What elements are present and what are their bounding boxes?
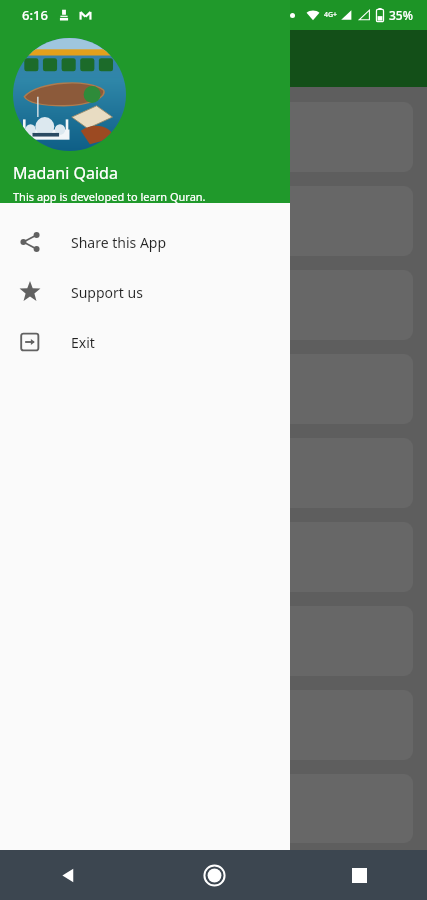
staticText: 4G+: [324, 10, 338, 20]
staticText: 6:16: [22, 6, 48, 24]
button[interactable]: [14, 690, 413, 760]
button[interactable]: Recent apps: [337, 853, 381, 897]
staticText: Exit: [71, 333, 95, 352]
staticText: Madani Qaida: [13, 162, 118, 184]
other: Share: [19, 231, 41, 253]
button[interactable]: [14, 102, 413, 172]
staticText: Support us: [71, 283, 143, 302]
other: Exit: [19, 331, 41, 353]
button[interactable]: [14, 354, 413, 424]
staticText: Share this App: [71, 233, 167, 252]
button[interactable]: [14, 270, 413, 340]
button[interactable]: [14, 438, 413, 508]
button[interactable]: Back: [46, 853, 90, 897]
button[interactable]: Madani Qaida: [0, 0, 290, 203]
other: Support us: [19, 281, 41, 303]
button[interactable]: [14, 522, 413, 592]
staticText: 35%: [389, 7, 413, 23]
staticText: मदनी क़ायदा): [70, 47, 154, 70]
button[interactable]: Exit: [0, 317, 290, 367]
button[interactable]: Home: [192, 853, 236, 897]
button[interactable]: [14, 606, 413, 676]
button[interactable]: [14, 186, 413, 256]
button[interactable]: Support us: [0, 267, 290, 317]
button[interactable]: Share: [0, 217, 290, 267]
staticText: This app is developed to learn Quran.: [13, 189, 206, 203]
button[interactable]: [14, 774, 413, 843]
